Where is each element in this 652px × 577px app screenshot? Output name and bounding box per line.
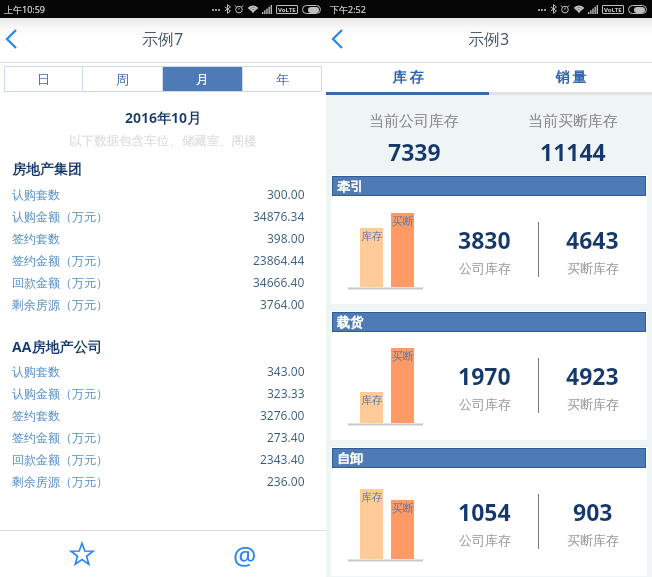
staticText: 11144 bbox=[540, 136, 606, 167]
staticText: 当前买断库存 bbox=[528, 112, 618, 131]
staticText: 公司库存 bbox=[459, 396, 511, 412]
button[interactable]: 牵引 bbox=[332, 176, 646, 303]
staticText: 年 bbox=[276, 71, 289, 87]
staticText: 签约金额（万元） bbox=[12, 253, 108, 268]
staticText: 273.40 bbox=[267, 429, 305, 445]
staticText: 买断库存 bbox=[567, 396, 619, 412]
staticText: 签约套数 bbox=[12, 408, 60, 423]
staticText: 牵引 bbox=[337, 178, 363, 194]
staticText: 343.00 bbox=[267, 363, 305, 379]
button[interactable]: 签约金额（万元） bbox=[0, 249, 326, 271]
staticText: 销量 bbox=[554, 69, 588, 87]
button[interactable]: Back bbox=[0, 18, 42, 60]
staticText: 300.00 bbox=[267, 186, 305, 202]
staticText: 下午2:52 bbox=[330, 3, 366, 15]
staticText: 买断库存 bbox=[567, 532, 619, 548]
staticText: 1054 bbox=[458, 496, 511, 527]
button[interactable]: Favorites bbox=[0, 531, 163, 577]
staticText: 剩余房源（万元） bbox=[12, 297, 108, 312]
button[interactable]: 签约套数 bbox=[0, 227, 326, 249]
staticText: 日 bbox=[37, 71, 50, 87]
button[interactable]: 载货 bbox=[332, 312, 646, 439]
staticText: @ bbox=[233, 537, 257, 572]
staticText: 签约金额（万元） bbox=[12, 430, 108, 445]
staticText: 23864.44 bbox=[253, 252, 305, 268]
button[interactable]: 签约金额（万元） bbox=[0, 426, 326, 448]
staticText: 3830 bbox=[458, 224, 511, 255]
button[interactable]: 回款金额（万元） bbox=[0, 271, 326, 293]
staticText: 34666.40 bbox=[253, 274, 305, 290]
staticText: 买断库存 bbox=[567, 260, 619, 276]
button[interactable]: 月 bbox=[163, 66, 242, 92]
staticText: 自卸 bbox=[337, 450, 363, 466]
staticText: 认购套数 bbox=[12, 364, 60, 379]
staticText: 示例3 bbox=[468, 28, 510, 50]
staticText: 2016年10月 bbox=[0, 108, 326, 127]
staticText: 周 bbox=[116, 71, 129, 87]
staticText: 认购套数 bbox=[12, 187, 60, 202]
button[interactable]: 剩余房源（万元） bbox=[0, 293, 326, 315]
staticText: 买断 bbox=[392, 349, 414, 363]
button[interactable]: 库存 bbox=[326, 63, 489, 92]
staticText: 认购金额（万元） bbox=[12, 209, 108, 224]
staticText: 323.33 bbox=[267, 385, 305, 401]
staticText: 34876.34 bbox=[253, 208, 305, 224]
staticText: 回款金额（万元） bbox=[12, 275, 108, 290]
staticText: 房地产集团 bbox=[12, 161, 82, 179]
staticText: 上午10:59 bbox=[4, 3, 46, 15]
staticText: 398.00 bbox=[267, 230, 305, 246]
staticText: 236.00 bbox=[267, 473, 305, 489]
staticText: 公司库存 bbox=[459, 260, 511, 276]
button[interactable]: 认购套数 bbox=[0, 183, 326, 205]
staticText: 3276.00 bbox=[260, 407, 305, 423]
staticText: 当前公司库存 bbox=[369, 112, 459, 131]
button[interactable]: 年 bbox=[243, 66, 322, 92]
staticText: 月 bbox=[196, 71, 209, 87]
staticText: 库存 bbox=[391, 69, 425, 87]
button[interactable]: 认购套数 bbox=[0, 360, 326, 382]
staticText: 买断 bbox=[392, 501, 414, 515]
staticText: 载货 bbox=[337, 314, 363, 330]
staticText: 库存 bbox=[361, 490, 383, 504]
staticText: 库存 bbox=[361, 229, 383, 243]
staticText: 1970 bbox=[458, 360, 511, 391]
button[interactable]: 认购金额（万元） bbox=[0, 382, 326, 404]
staticText: 认购金额（万元） bbox=[12, 386, 108, 401]
button[interactable]: Back bbox=[326, 18, 368, 60]
staticText: 3764.00 bbox=[260, 296, 305, 312]
button[interactable]: Mail bbox=[163, 531, 326, 577]
button[interactable]: 剩余房源（万元） bbox=[0, 470, 326, 492]
staticText: 2343.40 bbox=[260, 451, 305, 467]
staticText: VoLTE bbox=[604, 6, 622, 14]
staticText: 4643 bbox=[566, 224, 619, 255]
staticText: 库存 bbox=[361, 393, 383, 407]
staticText: 7339 bbox=[388, 136, 441, 167]
staticText: 4923 bbox=[566, 360, 619, 391]
staticText: 以下数据包含车位、储藏室、阁楼 bbox=[0, 133, 326, 149]
button[interactable]: 回款金额（万元） bbox=[0, 448, 326, 470]
button[interactable]: 认购金额（万元） bbox=[0, 205, 326, 227]
staticText: 剩余房源（万元） bbox=[12, 474, 108, 489]
staticText: 买断 bbox=[392, 214, 414, 228]
button[interactable]: 销量 bbox=[489, 63, 652, 92]
staticText: 公司库存 bbox=[459, 532, 511, 548]
staticText: VoLTE bbox=[278, 6, 296, 14]
button[interactable]: 自卸 bbox=[332, 448, 646, 575]
staticText: 903 bbox=[573, 496, 613, 527]
staticText: 示例7 bbox=[142, 28, 184, 50]
staticText: 回款金额（万元） bbox=[12, 452, 108, 467]
staticText: AA房地产公司 bbox=[12, 337, 102, 356]
button[interactable]: 签约套数 bbox=[0, 404, 326, 426]
button[interactable]: 周 bbox=[83, 66, 162, 92]
button[interactable]: 日 bbox=[4, 66, 82, 92]
staticText: 签约套数 bbox=[12, 231, 60, 246]
